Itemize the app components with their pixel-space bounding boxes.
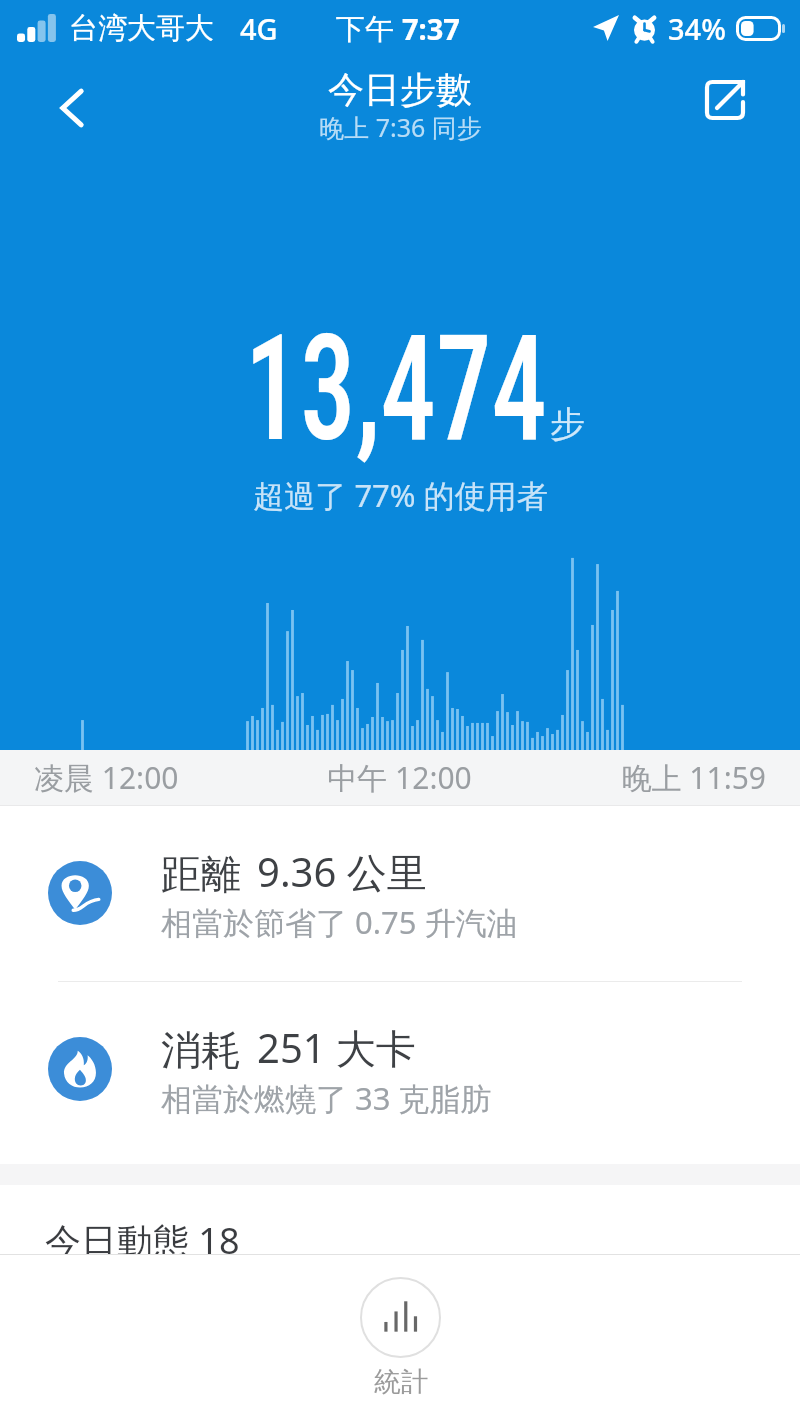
- staticText: 9.36 公里: [257, 844, 427, 899]
- button[interactable]: Back: [30, 64, 118, 152]
- button[interactable]: Share: [685, 60, 765, 140]
- staticText: 4G: [240, 9, 278, 48]
- staticText: 下午: [336, 8, 402, 48]
- staticText: 晚上 11:59: [533, 757, 766, 798]
- staticText: 超過了 77% 的使用者: [253, 474, 548, 516]
- button[interactable]: 統計: [314, 1272, 487, 1404]
- button[interactable]: 距離: [0, 806, 800, 980]
- staticText: 步: [550, 402, 585, 446]
- staticText: 台湾大哥大: [69, 10, 214, 47]
- staticText: 統計: [374, 1365, 428, 1399]
- staticText: 消耗: [161, 1025, 241, 1075]
- staticText: 7:37: [402, 9, 460, 48]
- staticText: 今日步數: [328, 67, 472, 112]
- staticText: 相當於節省了 0.75 升汽油: [161, 901, 518, 943]
- staticText: 晚上 7:36 同步: [319, 110, 482, 144]
- staticText: 相當於燃燒了 33 克脂肪: [161, 1077, 492, 1119]
- staticText: 距離: [161, 849, 241, 899]
- staticText: 今日動態 18: [45, 1216, 240, 1265]
- staticText: 13,474: [245, 304, 547, 475]
- staticText: 251 大卡: [257, 1020, 417, 1075]
- staticText: 中午 12:00: [266, 757, 533, 798]
- button[interactable]: 消耗: [0, 982, 800, 1156]
- staticText: 34%: [668, 9, 726, 48]
- staticText: 凌晨 12:00: [34, 757, 266, 798]
